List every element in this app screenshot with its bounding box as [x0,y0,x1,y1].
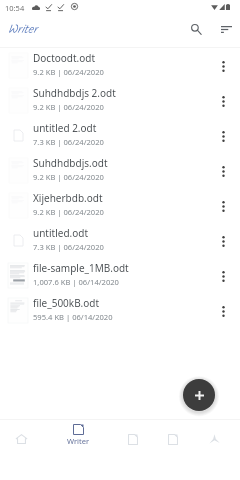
button[interactable]: file-sample_1MB.odt [0,258,240,293]
staticText: 7.3 KB | 06/24/2020 [33,137,104,147]
staticText: file_500kB.odt [33,296,100,310]
button[interactable]: More options [212,293,234,328]
button[interactable]: Suhdhdbdjs.odt [0,153,240,188]
staticText: 595.4 KB | 06/14/2020 [33,312,113,322]
button[interactable]: More options [212,153,234,188]
button[interactable]: More options [212,83,234,118]
button[interactable]: Sheets [115,429,151,449]
staticText: 10:54 [5,3,25,13]
staticText: Doctoodt.odt [33,51,96,65]
staticText: 7.3 KB | 06/24/2020 [33,242,104,252]
button[interactable]: untitled 2.odt [0,118,240,153]
staticText: file-sample_1MB.odt [33,261,129,275]
staticText: Writer [67,436,90,446]
staticText: 9.2 KB | 06/24/2020 [33,67,104,77]
button[interactable]: More options [212,223,234,258]
button[interactable]: Slides [155,429,191,449]
button[interactable]: Home [2,420,40,458]
button[interactable]: New document [183,379,215,411]
staticText: Writer [8,20,37,39]
staticText: 9.2 KB | 06/24/2020 [33,102,104,112]
staticText: Suhdhdbdjs 2.odt [33,86,116,100]
button[interactable]: Doctoodt.odt [0,48,240,83]
staticText: 9.2 KB | 06/24/2020 [33,172,104,182]
button[interactable]: PDF [196,429,232,449]
staticText: Xijeherbdb.odt [33,191,103,205]
staticText: untitled.odt [33,226,89,240]
staticText: 9.2 KB | 06/24/2020 [33,207,104,217]
staticText: Suhdhdbdjs.odt [33,156,108,170]
button[interactable]: Search [184,17,208,41]
button[interactable]: file_500kB.odt [0,293,240,328]
button[interactable]: Writer [56,420,100,458]
button[interactable]: More options [212,188,234,223]
button[interactable]: More options [212,118,234,153]
button[interactable]: Suhdhdbdjs 2.odt [0,83,240,118]
staticText: 1,007.6 KB | 06/14/2020 [33,277,119,287]
button[interactable]: Xijeherbdb.odt [0,188,240,223]
button[interactable]: untitled.odt [0,223,240,258]
button[interactable]: More options [212,258,234,293]
button[interactable]: Sort [214,17,238,41]
staticText: untitled 2.odt [33,121,97,135]
button[interactable]: More options [212,48,234,83]
